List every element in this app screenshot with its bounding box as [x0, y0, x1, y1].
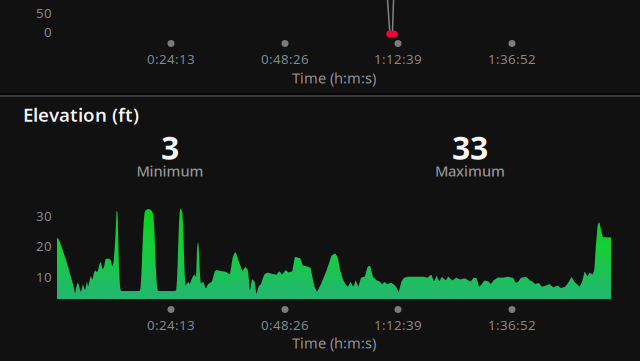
staticText: 0:24:13: [147, 316, 195, 334]
staticText: 0:24:13: [147, 50, 195, 68]
staticText: 10: [36, 268, 52, 286]
staticText: Time (h:m:s): [292, 68, 376, 87]
staticText: Elevation (ft): [23, 102, 139, 127]
staticText: Minimum: [136, 161, 203, 180]
staticText: 20: [36, 237, 52, 255]
staticText: 0:48:26: [261, 50, 309, 68]
staticText: 0: [44, 23, 52, 41]
staticText: 30: [36, 207, 52, 225]
staticText: 1:36:52: [488, 316, 536, 334]
staticText: 50: [36, 4, 52, 22]
staticText: 1:12:39: [374, 50, 422, 68]
staticText: Maximum: [435, 161, 505, 180]
staticText: 1:36:52: [488, 50, 536, 68]
staticText: 33: [452, 126, 488, 168]
staticText: 1:12:39: [374, 316, 422, 334]
staticText: 0:48:26: [261, 316, 309, 334]
staticText: Time (h:m:s): [292, 333, 376, 352]
staticText: 3: [161, 126, 179, 168]
